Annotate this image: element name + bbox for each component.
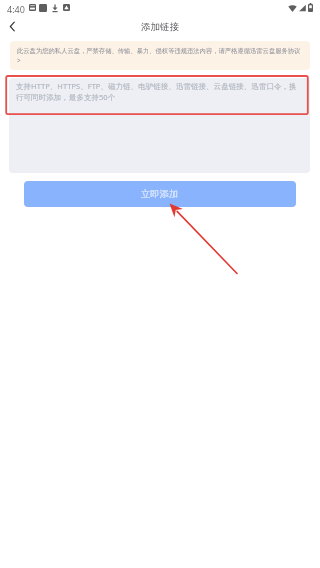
staticText: 4:40 (7, 3, 25, 15)
button[interactable]: 支持HTTP、HTTPS、FTP、磁力链、电驴链接、迅雷链接、云盘链接、迅雷口令… (9, 78, 310, 173)
staticText: 支持HTTP、HTTPS、FTP、磁力链、电驴链接、迅雷链接、云盘链接、迅雷口令… (16, 81, 304, 102)
staticText: 添加链接 (141, 21, 179, 33)
staticText: 立即添加 (141, 188, 179, 200)
staticText: 此云盘为您的私人云盘，严禁存储、传输、暴力、侵权等违规违法内容，请严格遵循迅雷云… (17, 46, 305, 65)
button[interactable]: Back (3, 17, 22, 36)
button[interactable]: 此云盘为您的私人云盘，严禁存储、传输、暴力、侵权等违规违法内容，请严格遵循迅雷云… (10, 41, 310, 70)
button[interactable]: 立即添加 (24, 181, 296, 207)
